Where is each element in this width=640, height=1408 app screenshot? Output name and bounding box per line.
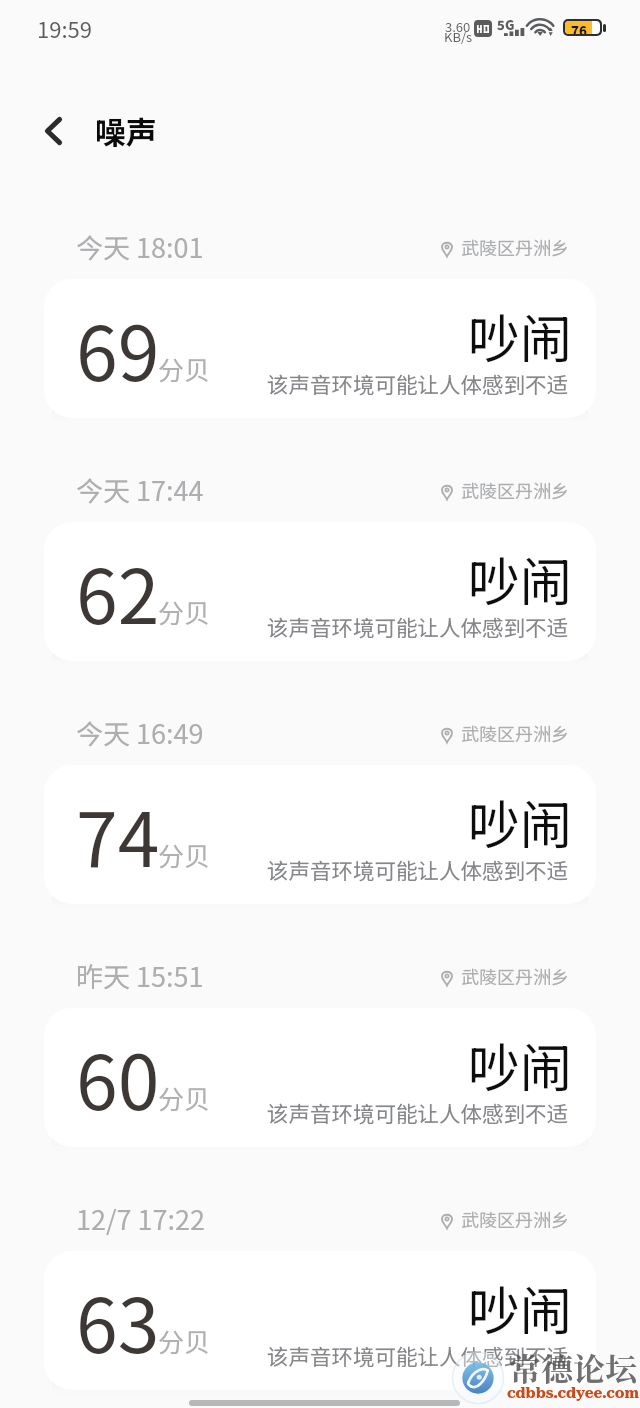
staticText: 武陵区丹洲乡 — [461, 720, 569, 746]
staticText: 常德论坛 — [509, 1344, 638, 1390]
staticText: 今天 16:49 — [76, 713, 204, 752]
button[interactable]: Back — [28, 106, 78, 156]
staticText: 今天 18:01 — [76, 227, 204, 266]
staticText: 60 — [76, 1023, 160, 1132]
button[interactable]: 69 — [44, 279, 596, 418]
staticText: cdbbs.cdyee.com — [507, 1384, 639, 1402]
staticText: KB/s — [444, 27, 473, 46]
staticText: 吵闹 — [468, 1027, 573, 1102]
button[interactable]: 60 — [44, 1008, 596, 1147]
staticText: 5G — [497, 15, 515, 34]
button[interactable]: 62 — [44, 522, 596, 661]
staticText: 武陵区丹洲乡 — [461, 1206, 569, 1232]
staticText: 今天 17:44 — [76, 470, 204, 509]
staticText: 19:59 — [37, 12, 92, 44]
staticText: 该声音环境可能让人体感到不适 — [267, 611, 569, 642]
staticText: 76 — [571, 21, 587, 34]
staticText: 3.60 — [445, 17, 471, 36]
staticText: 分贝 — [158, 1079, 211, 1117]
staticText: 12/7 17:22 — [76, 1199, 206, 1238]
staticText: 分贝 — [158, 593, 211, 631]
staticText: 吵闹 — [468, 784, 573, 859]
staticText: 噪声 — [95, 108, 157, 153]
staticText: 武陵区丹洲乡 — [461, 234, 569, 260]
staticText: 74 — [76, 780, 160, 889]
staticText: 该声音环境可能让人体感到不适 — [267, 1097, 569, 1128]
staticText: 昨天 15:51 — [76, 956, 204, 995]
button[interactable]: 74 — [44, 765, 596, 904]
staticText: 该声音环境可能让人体感到不适 — [267, 854, 569, 885]
staticText: 吵闹 — [468, 298, 573, 373]
staticText: 分贝 — [158, 836, 211, 874]
staticText: 吵闹 — [468, 541, 573, 616]
staticText: 分贝 — [158, 350, 211, 388]
staticText: 62 — [76, 537, 160, 646]
staticText: 分贝 — [158, 1322, 211, 1360]
staticText: 吵闹 — [468, 1270, 573, 1345]
staticText: 该声音环境可能让人体感到不适 — [267, 1340, 569, 1371]
button[interactable]: 63 — [44, 1251, 596, 1390]
staticText: 武陵区丹洲乡 — [461, 963, 569, 989]
staticText: 69 — [76, 294, 160, 403]
staticText: 该声音环境可能让人体感到不适 — [267, 368, 569, 399]
staticText: 武陵区丹洲乡 — [461, 477, 569, 503]
staticText: 63 — [76, 1266, 160, 1375]
